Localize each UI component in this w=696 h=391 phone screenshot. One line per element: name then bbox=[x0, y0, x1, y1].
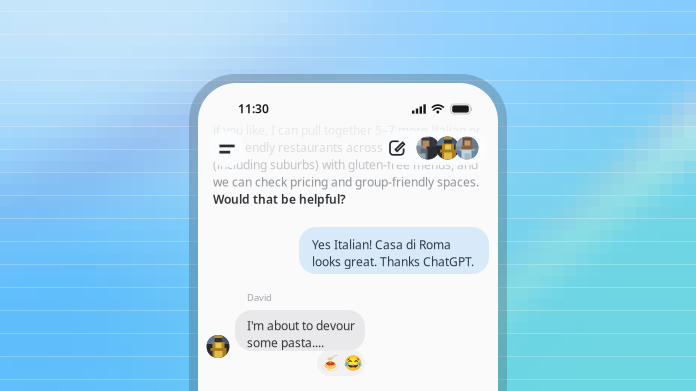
button[interactable]: Sidebar bbox=[209, 131, 245, 167]
staticText: 🍝 bbox=[320, 355, 338, 371]
staticText: looks great. Thanks ChatGPT. bbox=[312, 253, 474, 269]
staticText: some pasta.... bbox=[247, 334, 324, 350]
staticText: David bbox=[247, 291, 272, 304]
staticText: kid-friendly restaurants across the city bbox=[213, 139, 426, 155]
staticText: (including suburbs) with gluten-free men… bbox=[213, 157, 478, 172]
staticText: if you like, I can pull together 5–7 mor… bbox=[213, 122, 481, 138]
button[interactable]: New chat bbox=[382, 131, 412, 165]
staticText: we can check pricing and group-friendly … bbox=[213, 174, 479, 190]
staticText: 😂 bbox=[343, 355, 361, 371]
staticText: Would that be helpful? bbox=[213, 191, 346, 207]
staticText: 11:30 bbox=[238, 100, 269, 116]
staticText: I'm about to devour bbox=[247, 317, 355, 333]
staticText: Yes Italian! Casa di Roma bbox=[312, 236, 451, 252]
